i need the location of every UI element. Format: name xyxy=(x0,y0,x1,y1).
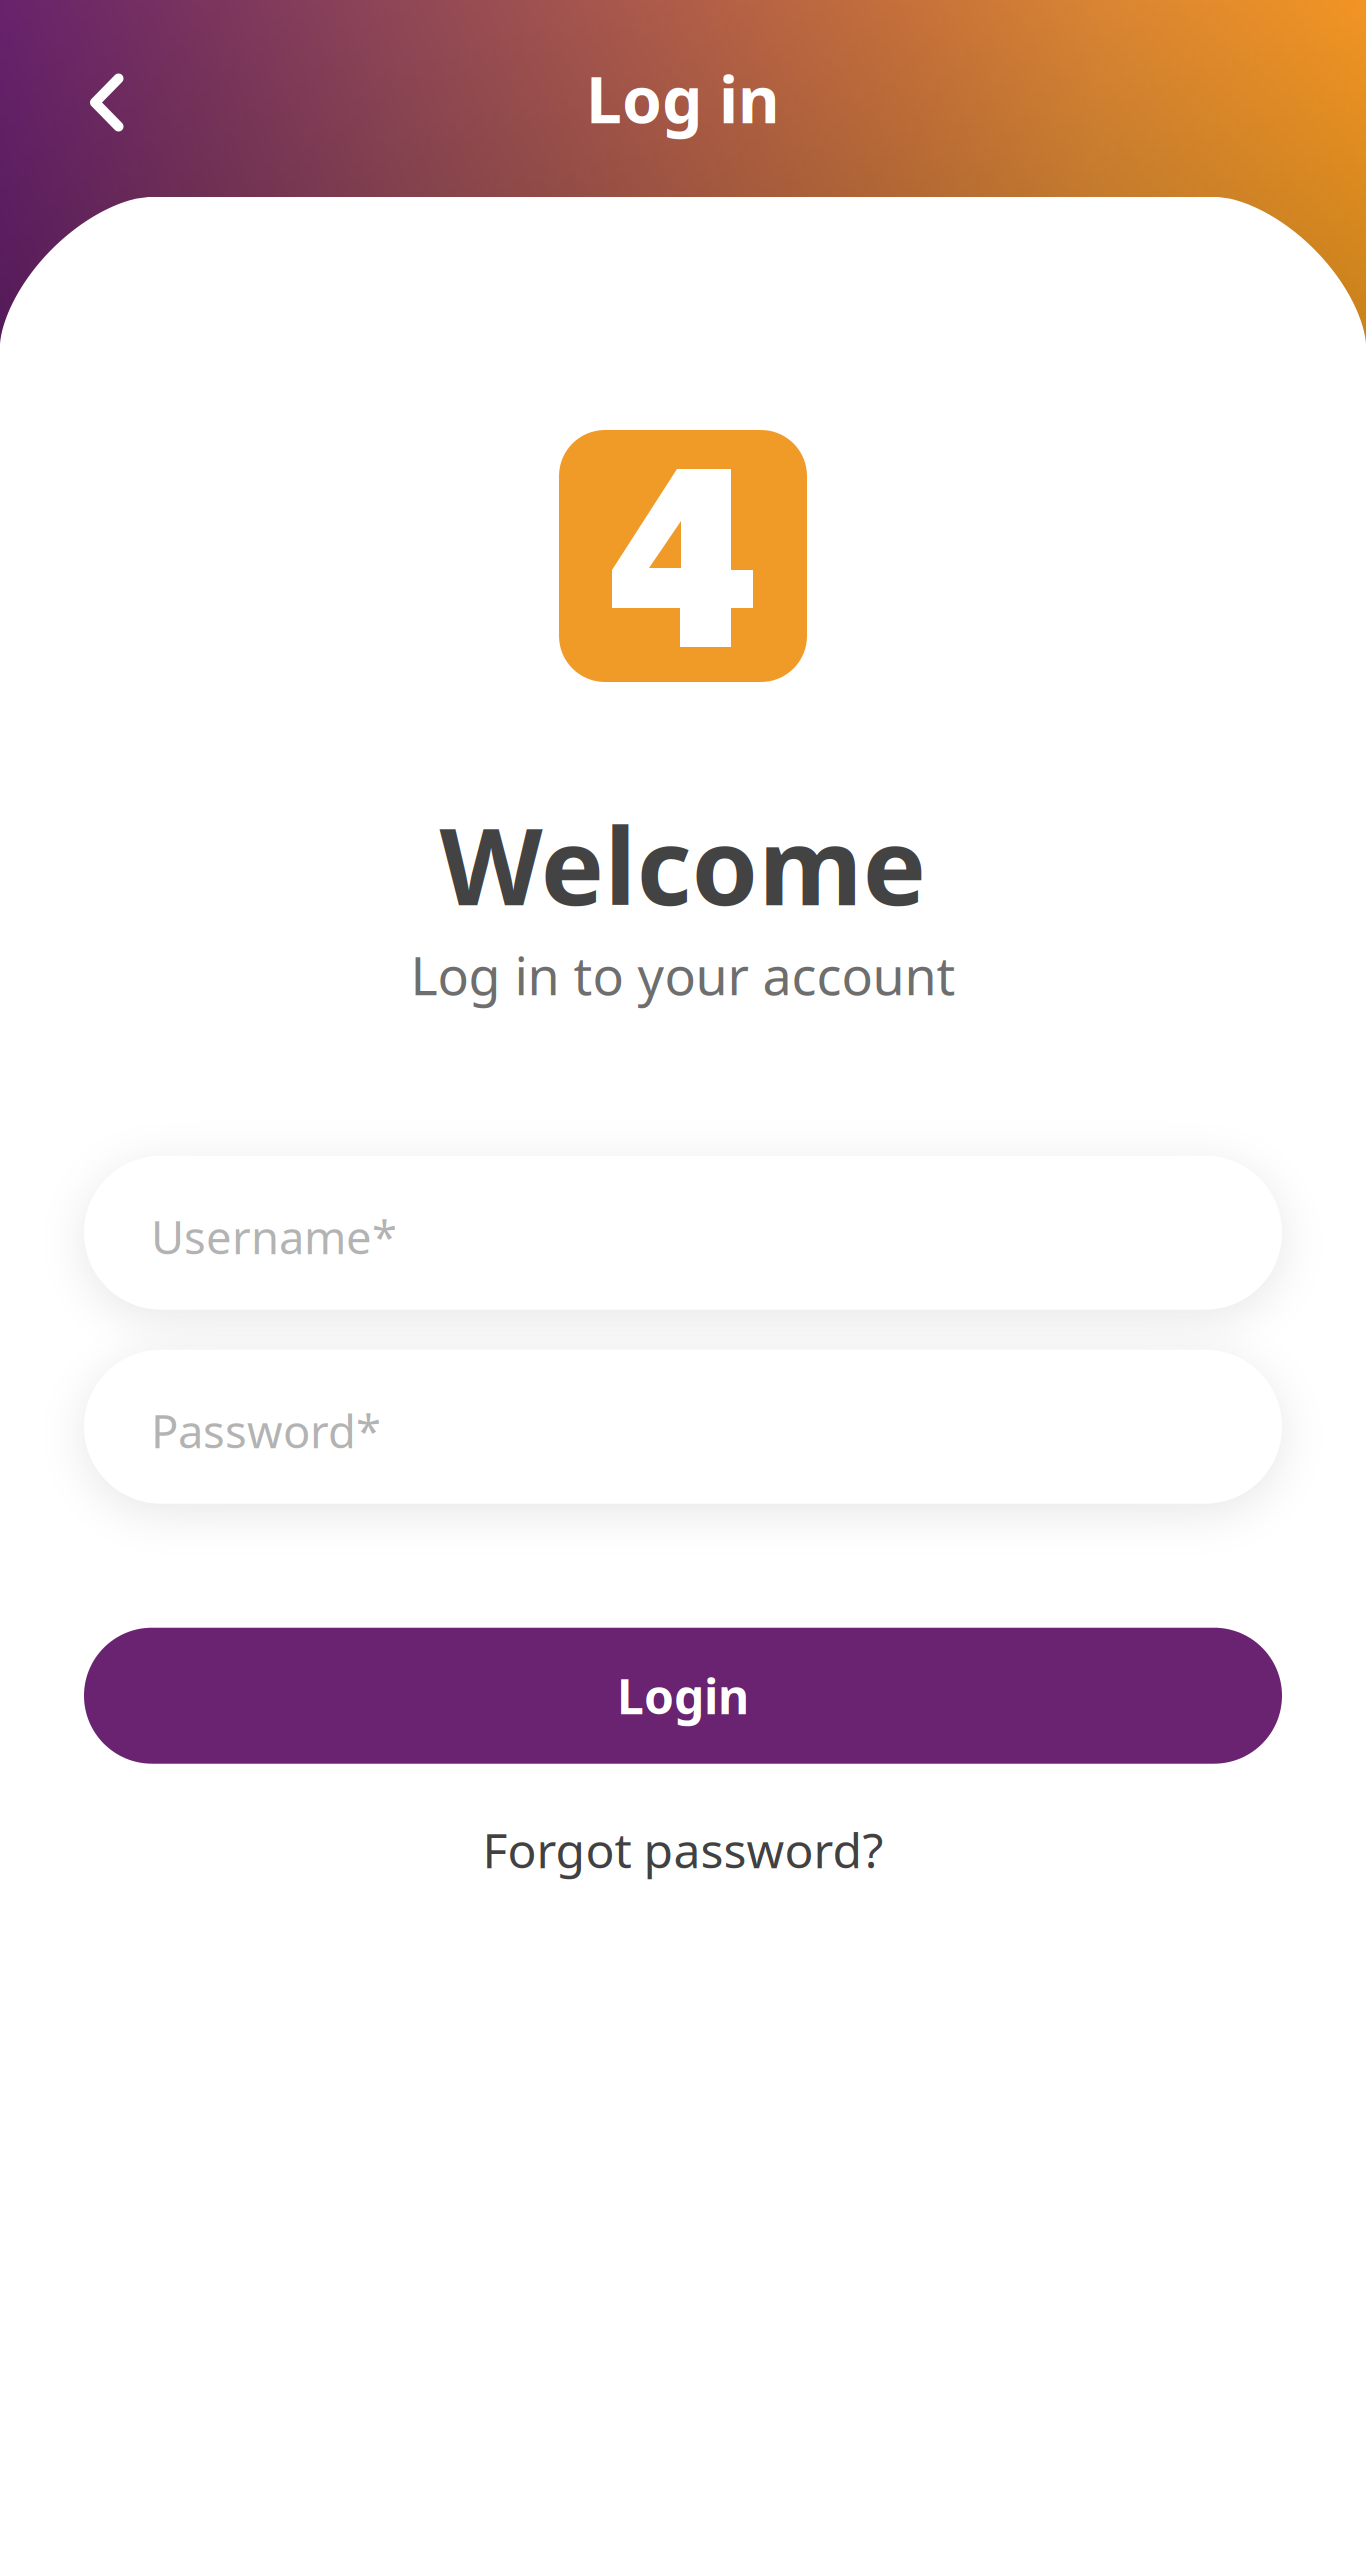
staticText: Welcome xyxy=(439,793,926,935)
button[interactable]: Password* xyxy=(84,1350,1282,1504)
staticText: Log in to your account xyxy=(410,941,955,1010)
button[interactable]: Forgot password? xyxy=(458,1800,907,1899)
staticText: Username* xyxy=(151,1207,397,1267)
staticText: Log in xyxy=(586,56,780,141)
staticText: Password* xyxy=(151,1401,381,1461)
button[interactable]: Back xyxy=(56,39,158,157)
staticText: Login xyxy=(617,1664,749,1727)
button[interactable]: Username* xyxy=(84,1156,1282,1310)
staticText: Forgot password? xyxy=(482,1818,883,1881)
button[interactable]: Login xyxy=(84,1628,1282,1764)
